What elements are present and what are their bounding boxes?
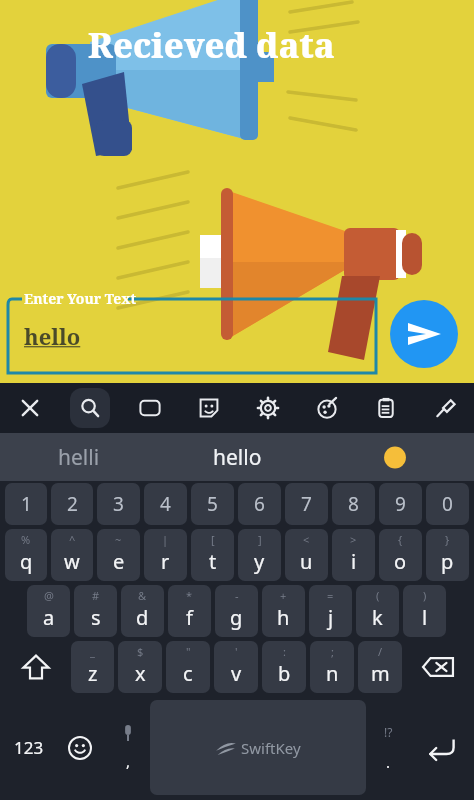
button[interactable]: > xyxy=(332,529,375,581)
staticText: c xyxy=(183,660,193,687)
button[interactable]: Close xyxy=(0,383,60,433)
staticText: 0 xyxy=(442,491,453,517)
staticText: h xyxy=(277,604,290,631)
staticText: ; xyxy=(331,644,334,659)
button[interactable]: # xyxy=(74,585,117,637)
button[interactable]: Space xyxy=(150,700,366,795)
staticText: t xyxy=(209,548,217,575)
button[interactable]: 5 xyxy=(191,483,234,525)
button[interactable]: % xyxy=(5,529,47,581)
staticText: 2 xyxy=(67,491,78,517)
staticText: ~ xyxy=(115,532,122,547)
button[interactable]: Enter xyxy=(411,695,471,800)
staticText: w xyxy=(64,548,80,575)
button[interactable]: Backspace xyxy=(404,639,471,695)
button[interactable]: Pin xyxy=(415,383,474,433)
button[interactable]: & xyxy=(121,585,164,637)
button[interactable]: / xyxy=(358,641,402,693)
button[interactable]: " xyxy=(166,641,210,693)
staticText: ^ xyxy=(69,532,76,547)
staticText: = xyxy=(327,588,334,603)
staticText: . xyxy=(386,752,391,772)
staticText: 6 xyxy=(254,491,265,517)
button[interactable]: Themes xyxy=(297,383,356,433)
staticText: hello xyxy=(24,321,81,351)
button[interactable]: Settings xyxy=(238,383,297,433)
button[interactable]: 0 xyxy=(426,483,469,525)
button[interactable]: GIF xyxy=(120,383,179,433)
button[interactable]: ( xyxy=(356,585,399,637)
button[interactable]: < xyxy=(285,529,328,581)
button[interactable]: hello xyxy=(158,433,316,481)
button[interactable]: Shift xyxy=(3,639,69,695)
button[interactable]: | xyxy=(144,529,187,581)
staticText: u xyxy=(300,548,313,575)
button[interactable]: ; xyxy=(310,641,354,693)
staticText: $ xyxy=(137,644,144,659)
staticText: s xyxy=(91,604,101,631)
button[interactable]: ^ xyxy=(51,529,93,581)
button[interactable]: @ xyxy=(27,585,70,637)
staticText: + xyxy=(280,588,287,603)
staticText: helli xyxy=(58,443,100,472)
button[interactable]: Emoji xyxy=(54,695,105,800)
staticText: < xyxy=(303,532,310,547)
staticText: Recieved data xyxy=(88,22,335,68)
button[interactable]: Send xyxy=(390,300,458,368)
staticText: } xyxy=(445,532,450,547)
button[interactable]: [ xyxy=(191,529,234,581)
button[interactable]: !? xyxy=(366,695,411,800)
button[interactable]: 2 xyxy=(51,483,93,525)
staticText: b xyxy=(278,660,291,687)
staticText: i xyxy=(351,548,357,575)
button[interactable]: ] xyxy=(238,529,281,581)
button[interactable]: = xyxy=(309,585,352,637)
button[interactable]: 7 xyxy=(285,483,328,525)
button[interactable]: : xyxy=(262,641,306,693)
button[interactable]: 6 xyxy=(238,483,281,525)
staticText: _ xyxy=(90,644,95,659)
staticText: n xyxy=(326,660,339,687)
button[interactable]: } xyxy=(426,529,469,581)
staticText: j xyxy=(328,604,334,631)
button[interactable]: 9 xyxy=(379,483,422,525)
button[interactable]: helli xyxy=(0,433,158,481)
staticText: * xyxy=(186,588,193,603)
staticText: 5 xyxy=(207,491,218,517)
button[interactable]: Voice input xyxy=(105,695,150,800)
button[interactable]: ) xyxy=(403,585,446,637)
button[interactable]: Enter Your Text xyxy=(8,297,376,375)
button[interactable]: 4 xyxy=(144,483,187,525)
staticText: k xyxy=(372,604,383,631)
staticText: SwiftKey xyxy=(241,738,301,758)
button[interactable]: ' xyxy=(214,641,258,693)
button[interactable]: 1 xyxy=(5,483,47,525)
button[interactable]: _ xyxy=(71,641,114,693)
staticText: l xyxy=(422,604,428,631)
staticText: 7 xyxy=(301,491,312,517)
button[interactable]: - xyxy=(215,585,258,637)
staticText: d xyxy=(136,604,149,631)
button[interactable]: 3 xyxy=(97,483,140,525)
staticText: > xyxy=(350,532,357,547)
staticText: r xyxy=(161,548,170,575)
staticText: 3 xyxy=(113,491,124,517)
staticText: x xyxy=(135,660,146,687)
button[interactable] xyxy=(316,433,474,481)
button[interactable]: + xyxy=(262,585,305,637)
staticText: q xyxy=(20,548,33,575)
button[interactable]: Sticker xyxy=(179,383,238,433)
staticText: [ xyxy=(211,532,215,547)
button[interactable]: 8 xyxy=(332,483,375,525)
button[interactable]: * xyxy=(168,585,211,637)
staticText: 4 xyxy=(160,491,171,517)
staticText: f xyxy=(186,604,193,631)
button[interactable]: 123 xyxy=(3,695,54,800)
button[interactable]: $ xyxy=(118,641,162,693)
button[interactable]: ~ xyxy=(97,529,140,581)
staticText: @ xyxy=(44,588,54,603)
staticText: ( xyxy=(376,588,380,603)
button[interactable]: { xyxy=(379,529,422,581)
button[interactable]: Clipboard xyxy=(356,383,415,433)
button[interactable]: Search xyxy=(60,383,120,433)
